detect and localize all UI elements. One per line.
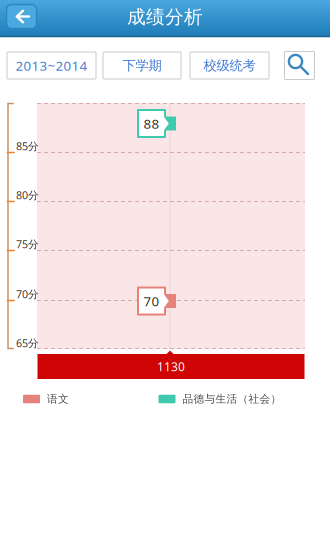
button[interactable]: Back	[6, 4, 36, 28]
staticText: 88	[143, 115, 159, 132]
staticText: 2013~2014	[15, 57, 87, 74]
staticText: 85分	[16, 139, 39, 153]
staticText: 70	[143, 292, 159, 310]
staticText: 1130	[157, 358, 185, 374]
button[interactable]: 下学期	[103, 52, 181, 79]
button[interactable]: 校级统考	[190, 52, 269, 79]
staticText: 65分	[16, 336, 39, 350]
staticText: 80分	[16, 188, 39, 202]
staticText: 品德与生活（社会）	[182, 392, 281, 405]
staticText: 成绩分析	[127, 5, 203, 28]
staticText: 下学期	[122, 57, 161, 74]
button[interactable]: Search	[284, 51, 314, 79]
staticText: 校级统考	[203, 57, 255, 74]
button[interactable]: 2013~2014	[7, 52, 96, 79]
staticText: 语文	[47, 392, 69, 405]
staticText: 75分	[16, 237, 39, 251]
staticText: 70分	[16, 287, 39, 301]
